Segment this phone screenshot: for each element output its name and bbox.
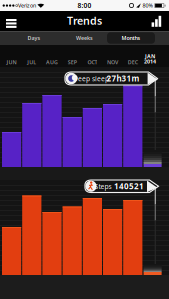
staticText: DEC	[128, 59, 138, 66]
button[interactable]: Days	[9, 31, 59, 45]
button[interactable]: Months	[106, 31, 156, 45]
staticText: Deep sleep	[73, 74, 109, 83]
staticText: Verizon	[18, 2, 36, 9]
staticText: 27h31m	[106, 73, 139, 84]
button[interactable]: Weeks	[59, 31, 109, 45]
staticText: NOV	[107, 59, 118, 66]
staticText: AUG	[46, 59, 58, 66]
button[interactable]: Charts	[137, 11, 165, 31]
staticText: 8:00	[77, 1, 91, 10]
staticText: Months	[121, 34, 140, 42]
staticText: JAN	[145, 53, 155, 60]
staticText: Trends	[67, 13, 102, 28]
staticText: OCT	[87, 59, 97, 66]
staticText: 2014	[144, 58, 156, 65]
staticText: JUL	[27, 59, 36, 66]
staticText: Weeks	[76, 34, 93, 42]
staticText: Days	[27, 34, 40, 42]
button[interactable]: Menu	[0, 11, 24, 31]
staticText: 140521	[114, 181, 144, 191]
staticText: Steps	[94, 182, 111, 191]
staticText: JUN	[7, 59, 17, 66]
staticText: 80%	[142, 2, 152, 9]
staticText: SEP	[68, 59, 77, 66]
